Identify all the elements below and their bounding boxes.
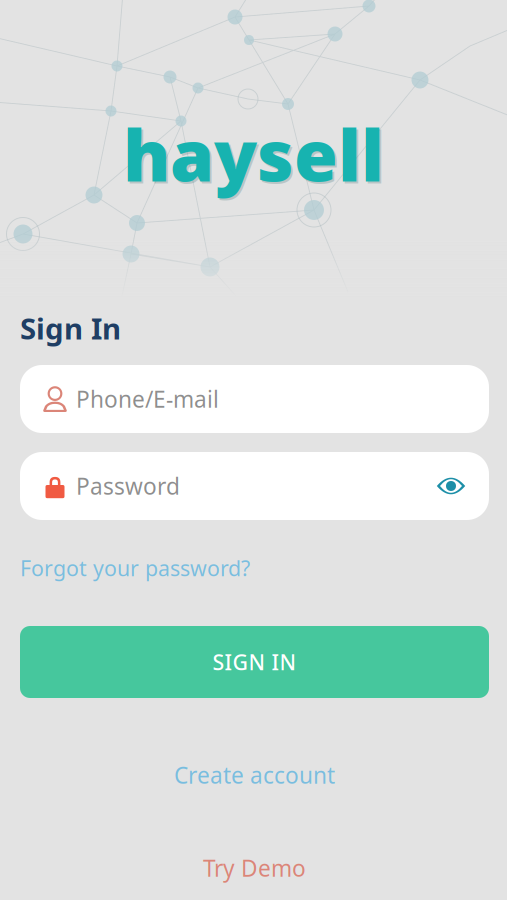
staticText: haysell (123, 107, 384, 201)
staticText: Phone/E-mail (76, 384, 219, 414)
staticText: Password (76, 471, 180, 501)
button[interactable]: Show password (432, 469, 470, 503)
staticText: Forgot your password? (20, 554, 250, 582)
button[interactable]: Forgot your password? (20, 554, 250, 582)
staticText: Try Demo (203, 853, 306, 883)
button[interactable]: Try Demo (20, 852, 489, 884)
button[interactable]: Create account (20, 758, 489, 792)
staticText: Sign In (20, 308, 121, 347)
staticText: SIGN IN (212, 648, 296, 676)
button[interactable]: SIGN IN (20, 626, 489, 698)
staticText: Create account (174, 760, 335, 790)
staticText: haysell (125, 109, 386, 203)
